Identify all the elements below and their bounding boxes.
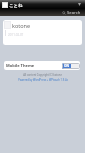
button[interactable]: Search: [62, 10, 81, 16]
staticText: All content Copyright (C) kotone: [23, 73, 62, 77]
staticText: ON: [64, 64, 70, 68]
button[interactable]: Menu: [2, 2, 8, 8]
staticText: Search: [67, 10, 81, 16]
staticText: Mobile Theme: [6, 63, 35, 68]
button[interactable]: Powered by WordPress + WPtouch 1.9.4x: [18, 78, 68, 82]
staticText: 2011.02.07: [8, 33, 24, 37]
staticText: ことね: [9, 3, 23, 9]
staticText: kotone: [12, 22, 31, 29]
button[interactable]: kotone: [3, 20, 82, 45]
button[interactable]: Expand: [78, 3, 81, 6]
button[interactable]: Mobile theme toggle: [62, 63, 80, 69]
